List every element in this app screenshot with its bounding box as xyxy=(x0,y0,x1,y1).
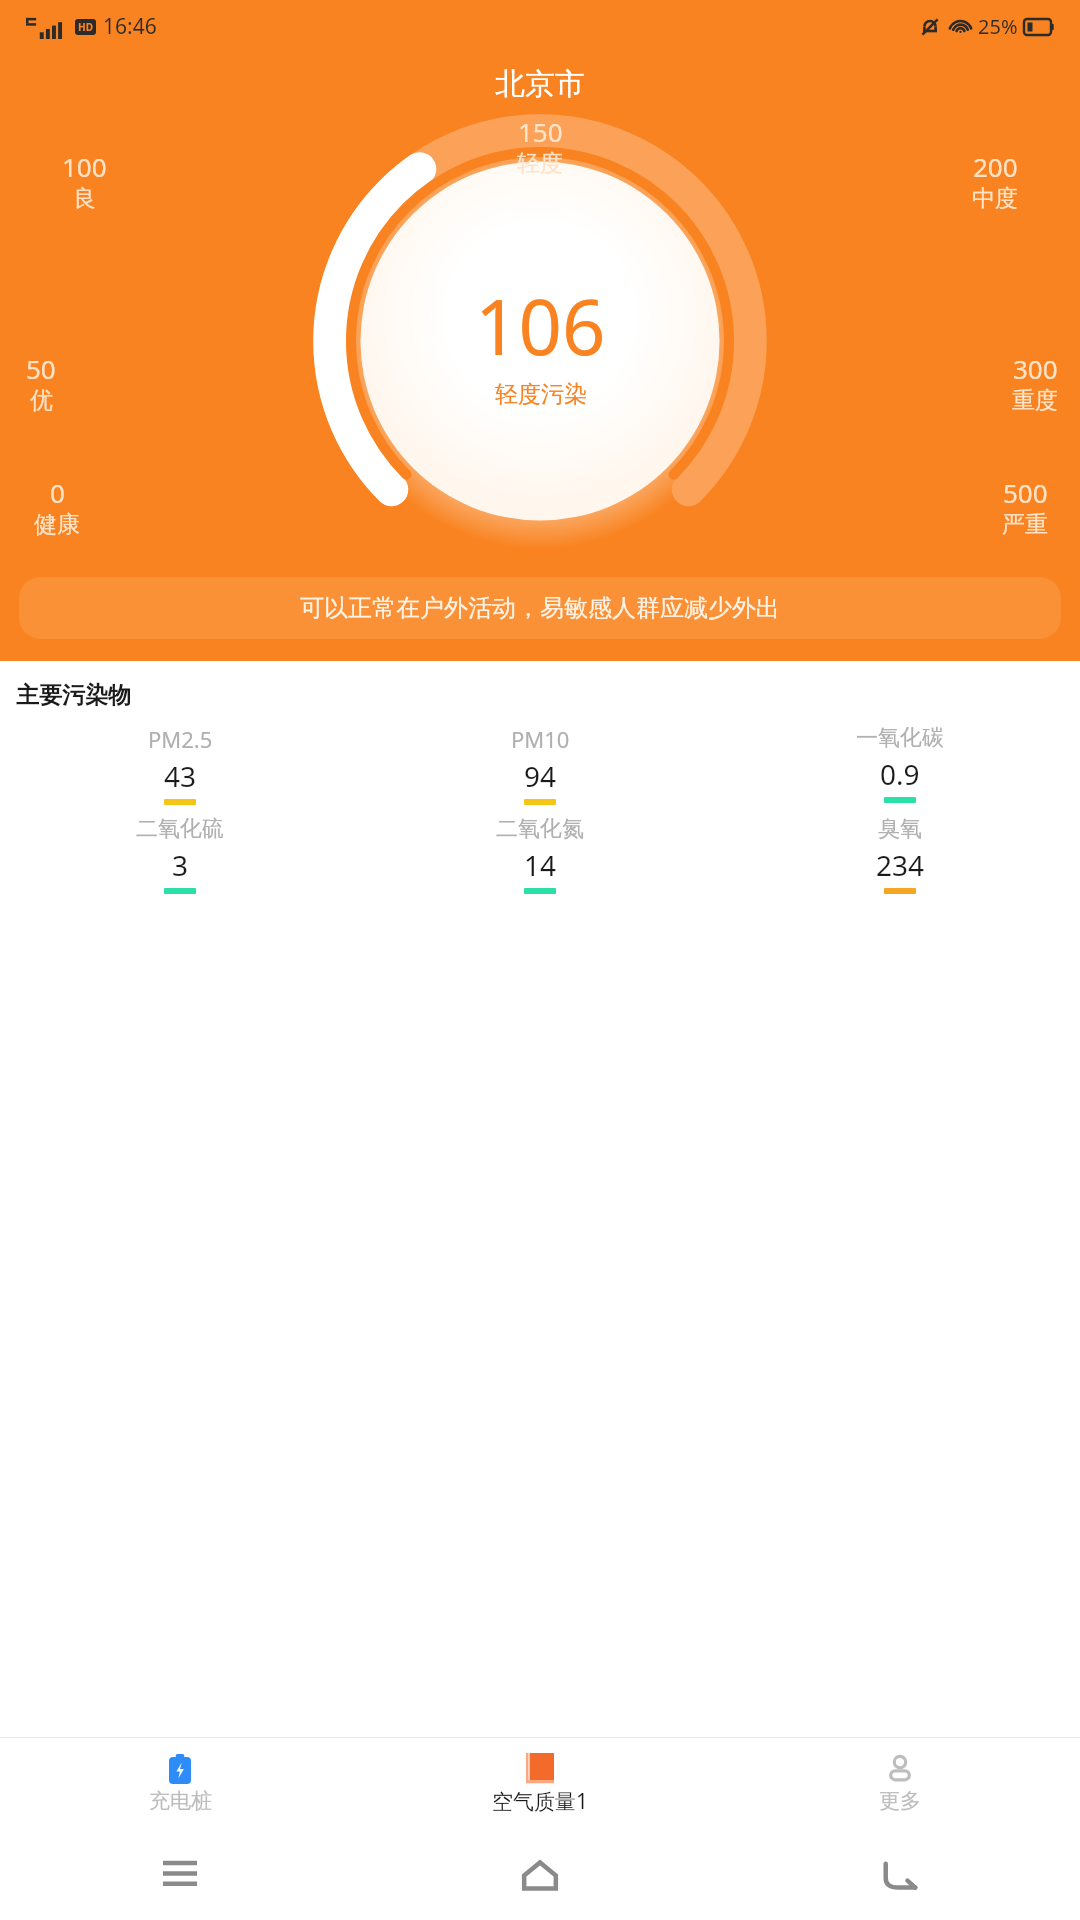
staticText: HD xyxy=(78,20,93,34)
staticText: 16:46 xyxy=(103,12,157,41)
staticText: 0 xyxy=(50,475,65,510)
staticText: 可以正常在户外活动，易敏感人群应减少外出 xyxy=(300,593,780,623)
button[interactable]: Back xyxy=(720,1830,1080,1920)
staticText: 轻度 xyxy=(517,149,563,178)
button[interactable]: 臭氧 xyxy=(720,815,1080,894)
staticText: 500 xyxy=(1003,475,1048,510)
staticText: 0.9 xyxy=(880,755,920,793)
staticText: 14 xyxy=(524,846,557,884)
staticText: PM2.5 xyxy=(148,724,213,754)
staticText: 二氧化硫 xyxy=(136,815,224,843)
staticText: 300 xyxy=(1013,351,1058,386)
staticText: 94 xyxy=(524,757,557,795)
staticText: 二氧化氮 xyxy=(496,815,584,843)
staticText: 轻度污染 xyxy=(495,380,587,409)
staticText: 234 xyxy=(876,846,925,884)
staticText: 106 xyxy=(475,274,606,378)
staticText: 50 xyxy=(26,351,56,386)
button[interactable]: 二氧化氮 xyxy=(360,815,720,894)
button[interactable]: PM10 xyxy=(360,724,720,805)
staticText: 100 xyxy=(62,149,107,184)
staticText: 重度 xyxy=(1012,386,1058,415)
button[interactable]: Recents xyxy=(0,1830,360,1920)
button[interactable]: 二氧化硫 xyxy=(0,815,360,894)
staticText: 150 xyxy=(518,114,563,149)
staticText: 中度 xyxy=(972,184,1018,213)
staticText: 3 xyxy=(172,846,189,884)
staticText: PM10 xyxy=(511,724,570,754)
button[interactable]: 空气质量1 xyxy=(360,1753,720,1816)
button[interactable]: 充电桩 xyxy=(0,1754,360,1814)
staticText: 优 xyxy=(30,386,53,415)
button[interactable]: PM2.5 xyxy=(0,724,360,805)
button[interactable]: 更多 xyxy=(720,1754,1080,1814)
staticText: 25% xyxy=(978,13,1018,40)
button[interactable]: 可以正常在户外活动，易敏感人群应减少外出 xyxy=(19,577,1061,639)
staticText: 严重 xyxy=(1002,510,1048,539)
staticText: 空气质量1 xyxy=(492,1787,589,1816)
staticText: 臭氧 xyxy=(878,815,922,843)
button[interactable]: Home xyxy=(360,1830,720,1920)
staticText: 一氧化碳 xyxy=(856,724,944,752)
staticText: 良 xyxy=(73,184,96,213)
staticText: 充电桩 xyxy=(149,1788,212,1814)
button[interactable]: 一氧化碳 xyxy=(720,724,1080,803)
staticText: 北京市 xyxy=(0,65,1080,103)
staticText: 主要污染物 xyxy=(16,681,131,710)
staticText: 200 xyxy=(973,149,1018,184)
staticText: 更多 xyxy=(879,1788,921,1814)
staticText: 43 xyxy=(164,757,197,795)
staticText: 健康 xyxy=(34,510,80,539)
